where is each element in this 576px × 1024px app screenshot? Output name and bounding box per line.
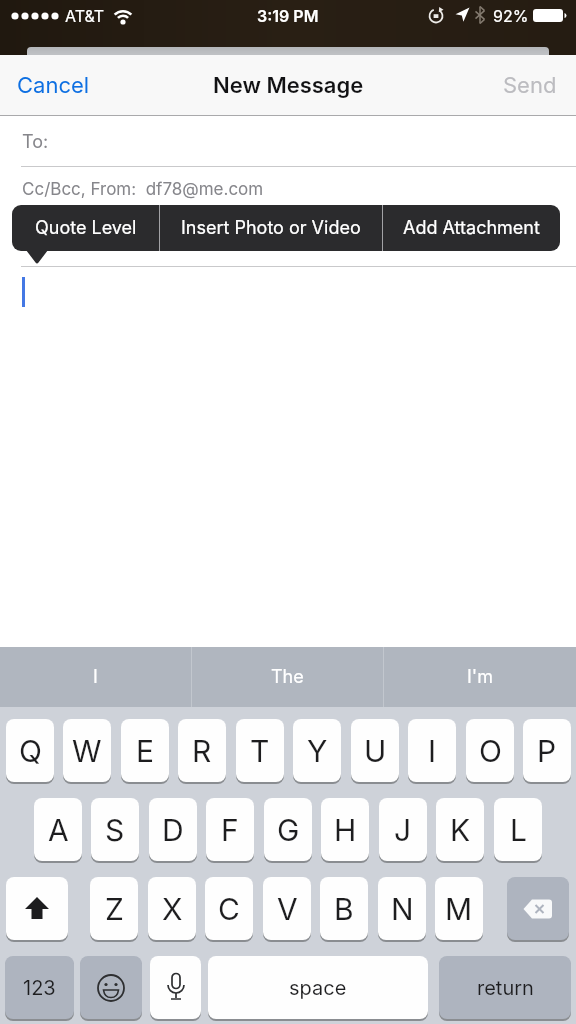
button[interactable]: X xyxy=(148,877,196,940)
staticText: AT&T xyxy=(65,6,105,25)
staticText: M xyxy=(445,891,473,927)
staticText: 3:19 PM xyxy=(257,6,319,25)
staticText: Z xyxy=(105,891,124,927)
staticText: N xyxy=(391,891,414,927)
button[interactable]: K xyxy=(436,798,484,861)
button[interactable]: P xyxy=(523,719,571,782)
staticText: Cc/Bcc, From: df78@me.com xyxy=(22,179,264,200)
button[interactable]: E xyxy=(121,719,169,782)
staticText: K xyxy=(450,812,471,848)
button[interactable]: D xyxy=(149,798,197,861)
button[interactable]: Y xyxy=(293,719,341,782)
staticText: U xyxy=(364,733,387,769)
button[interactable]: Cc/Bcc, From: df78@me.com xyxy=(0,167,576,212)
button[interactable]: G xyxy=(264,798,312,861)
staticText: I'm xyxy=(467,666,493,688)
staticText: F xyxy=(221,812,239,848)
staticText: X xyxy=(162,891,183,927)
staticText: L xyxy=(510,812,527,848)
staticText: Quote Level xyxy=(35,217,137,239)
staticText: Insert Photo or Video xyxy=(181,217,361,239)
button[interactable]: C xyxy=(205,877,253,940)
staticText: A xyxy=(48,812,69,848)
staticText: Send xyxy=(503,72,557,99)
button[interactable]: H xyxy=(321,798,369,861)
staticText: Cancel xyxy=(17,72,90,99)
staticText: 92% xyxy=(493,6,529,25)
button[interactable]: M xyxy=(435,877,483,940)
staticText: Add Attachment xyxy=(403,217,540,239)
staticText: I xyxy=(428,733,437,769)
button[interactable]: Cancel xyxy=(0,55,140,115)
button[interactable]: S xyxy=(91,798,139,861)
button[interactable]: L xyxy=(494,798,542,861)
staticText: V xyxy=(277,891,298,927)
button[interactable]: The xyxy=(192,647,383,707)
button[interactable] xyxy=(507,877,569,940)
button[interactable]: Quote Level xyxy=(12,205,159,251)
staticText: O xyxy=(479,733,502,769)
staticText: New Message xyxy=(213,72,364,99)
staticText: H xyxy=(334,812,357,848)
button[interactable]: R xyxy=(178,719,226,782)
button[interactable]: Insert Photo or Video xyxy=(160,205,382,251)
button[interactable]: F xyxy=(206,798,254,861)
staticText: P xyxy=(537,733,557,769)
staticText: To: xyxy=(22,131,49,153)
button[interactable]: B xyxy=(320,877,368,940)
staticText: Q xyxy=(19,733,42,769)
staticText: E xyxy=(136,733,155,769)
button[interactable]: U xyxy=(351,719,399,782)
staticText: S xyxy=(105,812,125,848)
staticText: J xyxy=(394,812,412,848)
staticText: W xyxy=(72,733,102,769)
button[interactable]: return xyxy=(439,956,571,1019)
button[interactable]: A xyxy=(34,798,82,861)
button[interactable] xyxy=(80,956,142,1019)
button[interactable]: Add Attachment xyxy=(383,205,560,251)
button[interactable]: T xyxy=(236,719,284,782)
button[interactable]: I xyxy=(0,647,191,707)
staticText: 123 xyxy=(23,976,56,1000)
button[interactable]: I'm xyxy=(384,647,576,707)
staticText: R xyxy=(192,733,212,769)
button[interactable]: To: xyxy=(0,116,576,167)
staticText: B xyxy=(334,891,354,927)
staticText: Y xyxy=(307,733,328,769)
staticText: space xyxy=(289,976,347,1000)
button[interactable]: space xyxy=(208,956,428,1019)
staticText: I xyxy=(93,666,98,688)
staticText: G xyxy=(277,812,300,848)
button[interactable]: 123 xyxy=(5,956,74,1019)
button[interactable]: J xyxy=(379,798,427,861)
button[interactable]: Send xyxy=(436,55,576,115)
button[interactable]: W xyxy=(63,719,111,782)
staticText: T xyxy=(250,733,270,769)
button[interactable]: Z xyxy=(90,877,138,940)
button[interactable]: Q xyxy=(6,719,54,782)
staticText: return xyxy=(477,976,534,1000)
button[interactable]: N xyxy=(378,877,426,940)
button[interactable]: I xyxy=(408,719,456,782)
button[interactable] xyxy=(150,956,201,1019)
staticText: D xyxy=(162,812,184,848)
button[interactable] xyxy=(6,877,68,940)
staticText: The xyxy=(271,666,304,688)
staticText: C xyxy=(218,891,240,927)
button[interactable]: O xyxy=(466,719,514,782)
button[interactable]: V xyxy=(263,877,311,940)
